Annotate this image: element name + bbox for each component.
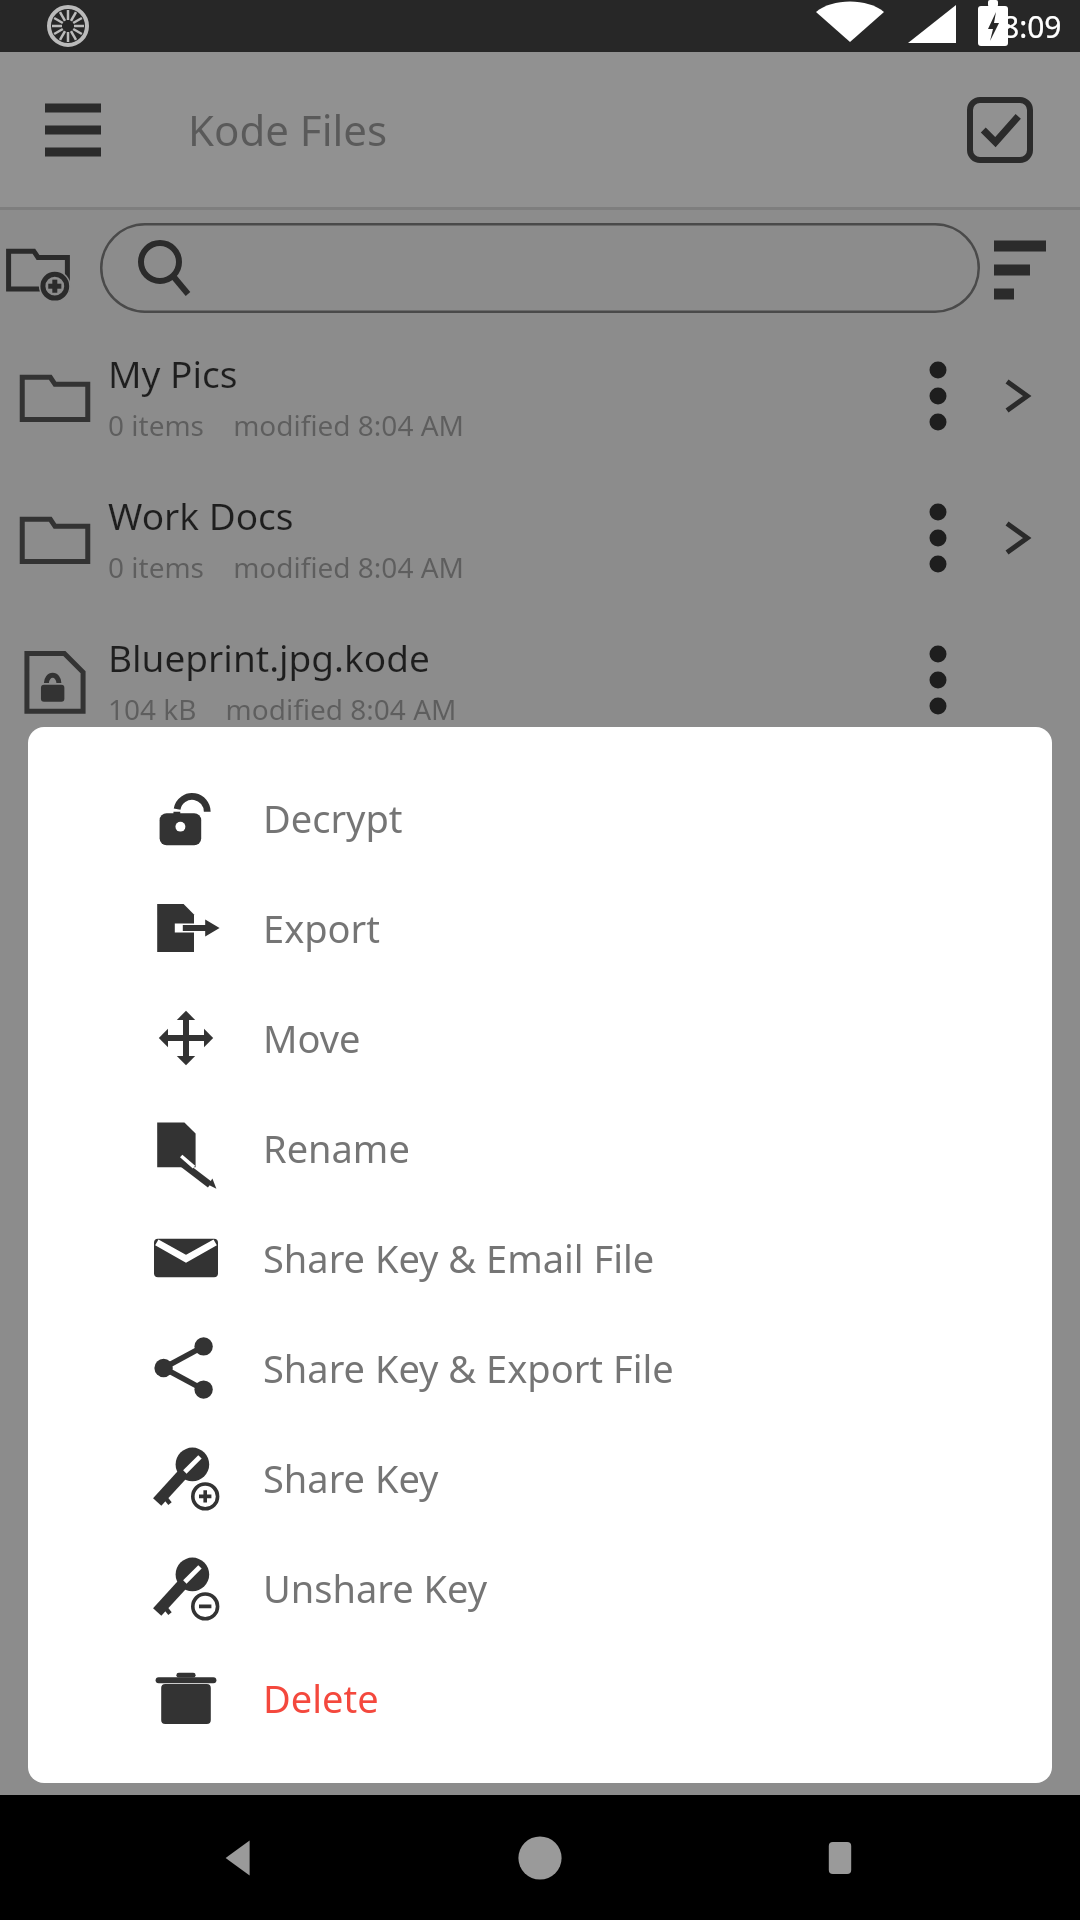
staticText: 104 kB modified 8:04 AM <box>108 690 457 728</box>
button[interactable]: Decrypt <box>28 763 1052 873</box>
button[interactable]: Unshare Key <box>28 1533 1052 1643</box>
button[interactable]: More options <box>908 508 968 568</box>
button[interactable]: Export <box>28 873 1052 983</box>
button[interactable]: Work Docs <box>0 467 1080 609</box>
button[interactable]: Share Key & Email File <box>28 1203 1052 1313</box>
staticText: Work Docs <box>108 490 294 540</box>
button[interactable] <box>100 223 980 313</box>
staticText: My Pics <box>108 348 238 398</box>
button[interactable]: Home <box>500 1818 580 1898</box>
button[interactable]: Share Key & Export File <box>28 1313 1052 1423</box>
button[interactable]: New folder <box>3 233 73 303</box>
staticText: Delete <box>263 1672 379 1724</box>
staticText: Kode Files <box>188 101 388 158</box>
staticText: Unshare Key <box>263 1562 488 1614</box>
staticText: 8:09 <box>1002 6 1062 47</box>
button[interactable]: Rename <box>28 1093 1052 1203</box>
button[interactable]: Move <box>28 983 1052 1093</box>
staticText: 0 items modified 8:04 AM <box>108 406 464 444</box>
staticText: Move <box>263 1012 361 1064</box>
button[interactable]: Recent apps <box>800 1818 880 1898</box>
staticText: Share Key & Email File <box>263 1232 655 1284</box>
button[interactable]: Open navigation menu <box>36 93 110 167</box>
button[interactable]: My Pics <box>0 325 1080 467</box>
staticText: Blueprint.jpg.kode <box>108 632 430 682</box>
staticText: Share Key <box>263 1452 439 1504</box>
button[interactable]: More options <box>908 650 968 710</box>
staticText: Decrypt <box>263 792 403 844</box>
staticText: Export <box>263 902 381 954</box>
staticText: Share Key & Export File <box>263 1342 674 1394</box>
button[interactable]: Share Key <box>28 1423 1052 1533</box>
button[interactable]: Back <box>200 1818 280 1898</box>
button[interactable]: Select items <box>962 92 1038 168</box>
staticText: 0 items modified 8:04 AM <box>108 548 464 586</box>
button[interactable]: More options <box>908 366 968 426</box>
staticText: Rename <box>263 1122 410 1174</box>
button[interactable]: Blueprint.jpg.kode <box>0 609 1080 751</box>
button[interactable]: Sort <box>988 235 1054 301</box>
button[interactable]: Delete <box>28 1643 1052 1753</box>
